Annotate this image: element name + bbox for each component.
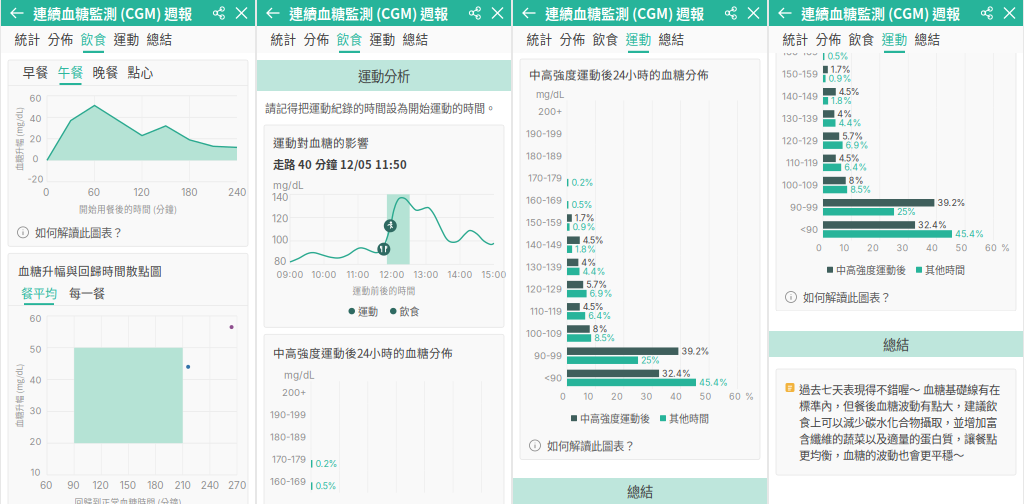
button[interactable]: 運動 <box>622 26 655 53</box>
button[interactable]: Back <box>5 0 29 26</box>
button[interactable]: 總結 <box>911 26 944 53</box>
staticText: 請記得把運動紀錄的時間設為開始運動的時間。 <box>265 100 496 116</box>
staticText: 統計 <box>782 29 808 47</box>
button[interactable]: Back <box>773 0 797 26</box>
staticText: 總結 <box>627 481 653 501</box>
button[interactable]: 午餐 <box>53 60 88 85</box>
button[interactable]: 早餐 <box>18 60 53 85</box>
staticText: 110-119 <box>786 157 818 169</box>
staticText: 140-149 <box>782 90 818 102</box>
button[interactable]: 飲食 <box>333 26 366 53</box>
button[interactable]: Close <box>486 0 509 26</box>
staticText: 8% <box>849 175 864 186</box>
staticText: 120-129 <box>526 283 562 295</box>
staticText: 6.4% <box>844 162 867 173</box>
staticText: 150-159 <box>526 217 562 228</box>
staticText: 0.2% <box>571 177 593 188</box>
staticText: 40 <box>29 374 41 386</box>
staticText: 20 <box>29 133 41 144</box>
button[interactable]: 分佈 <box>44 26 77 53</box>
staticText: 10 <box>839 243 849 254</box>
button[interactable]: 總結 <box>143 26 176 53</box>
staticText: 每一餐 <box>69 284 105 302</box>
staticText: 12:00 <box>379 269 404 280</box>
button[interactable]: Close <box>230 0 253 26</box>
staticText: 如何解讀此圖表？ <box>547 437 635 454</box>
staticText: 中高強度運動後24小時的血糖分佈 <box>273 344 453 361</box>
staticText: 200+ <box>282 387 306 398</box>
staticText: 晚餐 <box>92 62 118 81</box>
staticText: 90 <box>67 479 79 491</box>
button[interactable]: 飲食 <box>77 26 110 53</box>
button[interactable]: 運動 <box>878 26 911 53</box>
button[interactable]: 如何解讀此圖表？ <box>776 283 1016 311</box>
staticText: 早餐 <box>22 62 48 81</box>
staticText: 240 <box>201 479 219 491</box>
staticText: 25% <box>641 355 660 366</box>
staticText: 5.7% <box>586 279 607 290</box>
button[interactable]: 統計 <box>267 26 300 53</box>
staticText: 10 <box>30 467 40 478</box>
staticText: 80 <box>274 255 286 267</box>
staticText: % <box>1001 243 1010 254</box>
staticText: 1.8% <box>831 95 852 106</box>
staticText: -20 <box>27 173 43 185</box>
button[interactable]: 每一餐 <box>63 283 111 305</box>
button[interactable]: 統計 <box>523 26 556 53</box>
staticText: % <box>745 391 754 402</box>
staticText: 8.5% <box>594 333 615 343</box>
button[interactable]: 餐平均 <box>15 283 63 305</box>
button[interactable]: Back <box>517 0 541 26</box>
staticText: 0 <box>816 243 822 254</box>
staticText: 總結 <box>883 334 909 354</box>
staticText: 開始用餐後的時間 (分鐘) <box>79 203 177 215</box>
button[interactable]: 晚餐 <box>88 60 123 85</box>
button[interactable]: 如何解讀此圖表？ <box>8 218 248 246</box>
staticText: 運動 <box>881 29 907 47</box>
staticText: 8.5% <box>850 184 871 195</box>
button[interactable]: 總結 <box>399 26 432 53</box>
button[interactable]: Close <box>998 0 1021 26</box>
staticText: 午餐 <box>57 62 83 81</box>
button[interactable]: 統計 <box>11 26 44 53</box>
button[interactable]: Back <box>261 0 285 26</box>
button[interactable]: 飲食 <box>589 26 622 53</box>
staticText: 統計 <box>270 29 296 47</box>
staticText: 100-109 <box>782 179 818 191</box>
button[interactable]: 分佈 <box>812 26 845 53</box>
staticText: 09:00 <box>276 269 303 280</box>
button[interactable]: 點心 <box>123 60 158 85</box>
button[interactable]: 分佈 <box>556 26 589 53</box>
button[interactable]: 運動 <box>110 26 143 53</box>
staticText: 25% <box>897 206 916 217</box>
button[interactable]: Share <box>464 0 486 26</box>
button[interactable]: Share <box>208 0 230 26</box>
staticText: 13:00 <box>413 269 438 280</box>
staticText: 120 <box>272 213 288 225</box>
staticText: 分佈 <box>559 29 585 47</box>
staticText: 100 <box>272 234 288 246</box>
staticText: 4.4% <box>838 117 861 128</box>
button[interactable]: 飲食 <box>845 26 878 53</box>
button[interactable]: Share <box>976 0 998 26</box>
staticText: 走路 40 分鐘 12/05 11:50 <box>273 156 407 172</box>
button[interactable]: 總結 <box>512 478 768 504</box>
button[interactable]: 運動 <box>366 26 399 53</box>
staticText: 10:00 <box>311 269 336 280</box>
staticText: mg/dL <box>536 89 564 100</box>
button[interactable]: Share <box>720 0 742 26</box>
button[interactable]: 分佈 <box>300 26 333 53</box>
staticText: 點心 <box>127 62 153 81</box>
staticText: 1.7% <box>575 213 595 223</box>
staticText: 總結 <box>914 29 940 47</box>
staticText: 總結 <box>658 29 684 47</box>
staticText: 血糖升幅與回歸時間散點圖 <box>18 262 162 279</box>
button[interactable]: 統計 <box>779 26 812 53</box>
button[interactable]: Close <box>742 0 765 26</box>
staticText: 20 <box>29 436 41 447</box>
button[interactable]: 總結 <box>655 26 688 53</box>
button[interactable]: 如何解讀此圖表？ <box>520 431 760 459</box>
staticText: 40 <box>670 391 682 402</box>
staticText: 120-129 <box>782 135 818 146</box>
staticText: 130-139 <box>526 261 562 273</box>
